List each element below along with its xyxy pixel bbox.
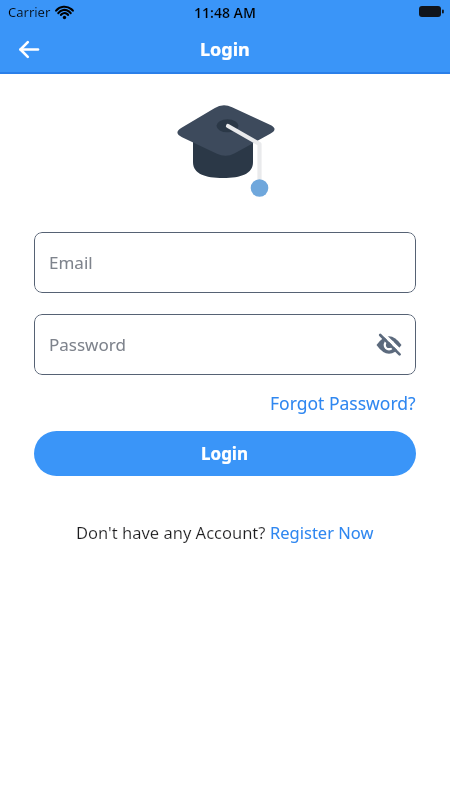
button[interactable]: Password <box>34 314 416 375</box>
staticText: Carrier <box>8 3 51 21</box>
button[interactable]: Email <box>34 232 416 293</box>
button[interactable]: Register Now <box>270 521 374 543</box>
staticText: Password <box>49 333 126 356</box>
staticText: 11:48 AM <box>194 3 256 22</box>
button[interactable] <box>376 332 402 358</box>
staticText: Login <box>201 442 249 465</box>
button[interactable] <box>10 30 48 68</box>
button[interactable]: Login <box>34 431 416 476</box>
staticText: Login <box>200 37 250 62</box>
staticText: Don't have any Account? <box>76 521 270 543</box>
button[interactable]: Forgot Password? <box>270 391 416 415</box>
staticText: Email <box>49 251 93 274</box>
